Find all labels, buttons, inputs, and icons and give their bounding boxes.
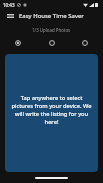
staticText: 10:43 xyxy=(3,2,15,8)
button[interactable]: Open navigation menu xyxy=(4,10,16,22)
staticText: 1/3 Upload Photos xyxy=(32,27,71,33)
button[interactable]: Tap anywhere to select pictures from you… xyxy=(5,54,98,172)
button[interactable]: Step 1 of 3 xyxy=(12,37,24,49)
button[interactable]: Step 2 of 3 xyxy=(46,37,58,49)
staticText: Tap anywhere to select pictures from you… xyxy=(11,94,92,126)
button[interactable]: Step 3 of 3 xyxy=(79,37,91,49)
staticText: Easy House Time Saver xyxy=(19,12,84,20)
